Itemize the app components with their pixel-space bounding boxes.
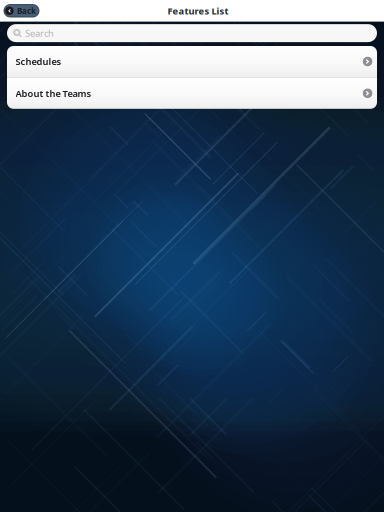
button[interactable]: Schedules	[7, 46, 377, 77]
button[interactable]: About the Teams	[7, 78, 377, 109]
staticText: Features List	[167, 5, 228, 17]
button[interactable]: Back	[4, 5, 39, 17]
staticText: Schedules	[16, 55, 62, 68]
staticText: Search	[25, 27, 54, 39]
staticText: About the Teams	[16, 87, 92, 99]
staticText: Back	[17, 5, 36, 16]
button[interactable]: Search	[7, 24, 377, 42]
